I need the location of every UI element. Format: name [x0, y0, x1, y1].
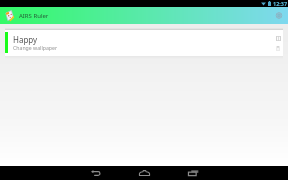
- button[interactable]: Home: [134, 166, 154, 180]
- staticText: Change wallpaper: [13, 44, 58, 51]
- button[interactable]: Pause: [274, 35, 282, 42]
- staticText: Happy: [13, 34, 38, 45]
- button[interactable]: Recent apps: [183, 166, 203, 180]
- staticText: 12:37: [273, 0, 288, 7]
- button[interactable]: Delete: [274, 44, 282, 52]
- button[interactable]: Back: [86, 166, 106, 180]
- button[interactable]: More options: [273, 10, 284, 21]
- staticText: AIRS Ruler: [19, 12, 49, 20]
- button[interactable]: Happy: [5, 30, 283, 56]
